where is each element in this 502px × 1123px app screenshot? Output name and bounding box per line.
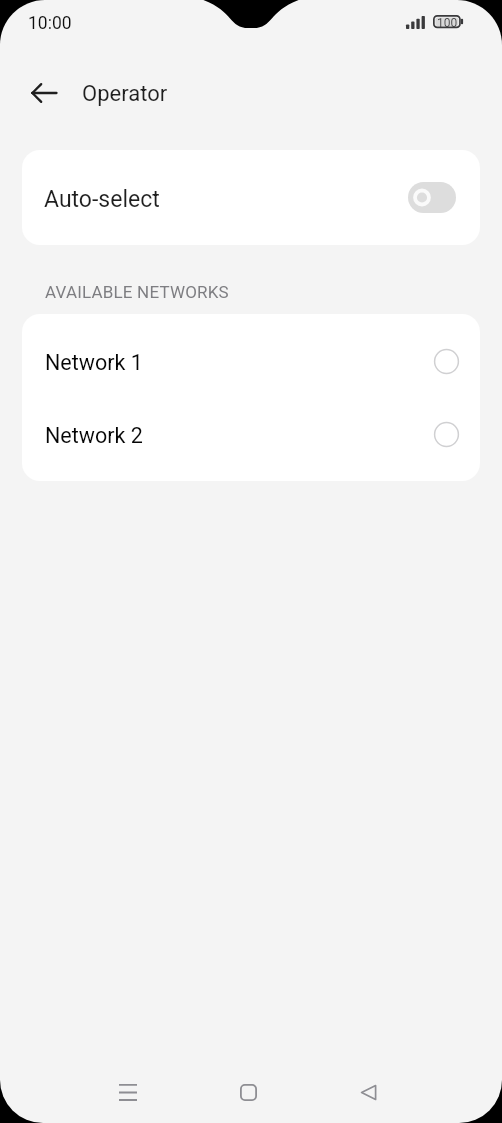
- button[interactable]: Auto-select: [22, 150, 480, 245]
- staticText: 10:00: [28, 13, 72, 34]
- button[interactable]: Auto-select: [408, 182, 456, 213]
- button[interactable]: Network 2: [22, 398, 480, 471]
- staticText: Operator: [82, 81, 168, 107]
- button[interactable]: Network 1: [22, 325, 480, 398]
- staticText: Auto-select: [44, 186, 160, 213]
- button[interactable]: Home: [226, 1070, 270, 1114]
- button[interactable]: Recent apps: [106, 1070, 150, 1114]
- staticText: 100: [437, 16, 458, 30]
- staticText: Network 1: [45, 350, 143, 375]
- button[interactable]: Back: [22, 71, 66, 115]
- staticText: Network 2: [45, 423, 143, 448]
- button[interactable]: Back: [346, 1070, 390, 1114]
- staticText: AVAILABLE NETWORKS: [45, 282, 229, 302]
